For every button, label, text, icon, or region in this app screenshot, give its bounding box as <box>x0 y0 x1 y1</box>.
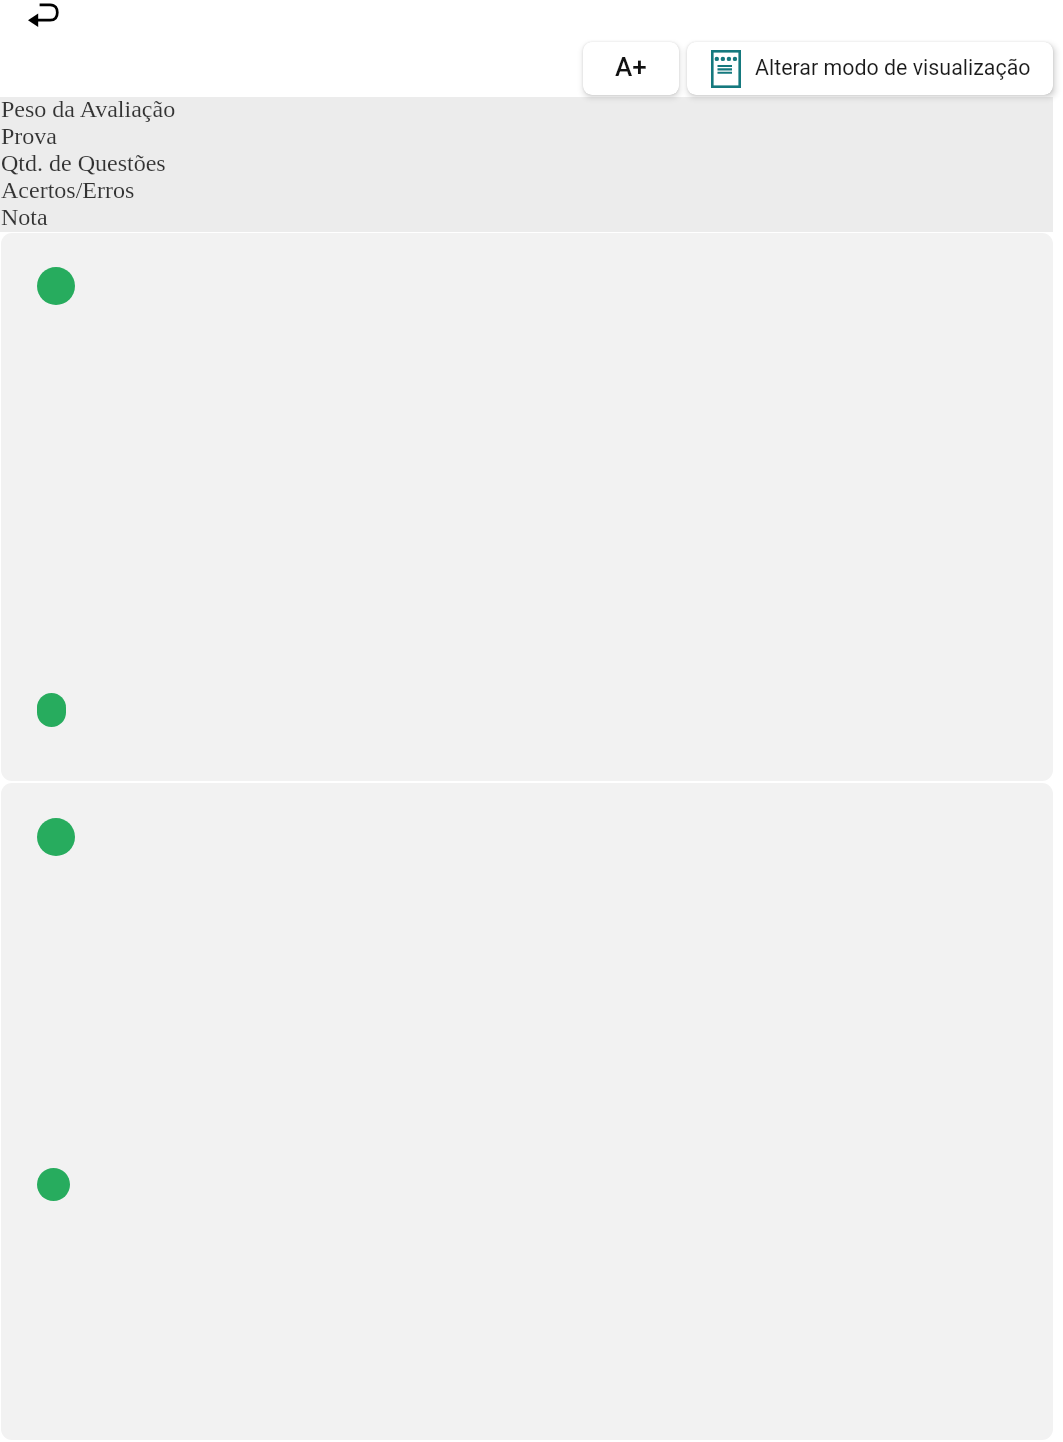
button[interactable]: Voltar <box>16 0 72 44</box>
staticText: Alterar modo de visualização <box>755 55 1031 80</box>
button[interactable]: A+ <box>583 42 679 95</box>
staticText: Qtd. de Questões <box>1 150 166 177</box>
staticText: Nota <box>1 204 48 231</box>
staticText: Prova <box>1 123 57 150</box>
staticText: Peso da Avaliação <box>1 96 176 123</box>
button[interactable] <box>1 783 1053 1440</box>
button[interactable] <box>1 233 1053 781</box>
button[interactable]: Alterar modo de visualização <box>687 42 1053 95</box>
staticText: Acertos/Erros <box>1 177 135 204</box>
staticText: A+ <box>615 52 647 82</box>
